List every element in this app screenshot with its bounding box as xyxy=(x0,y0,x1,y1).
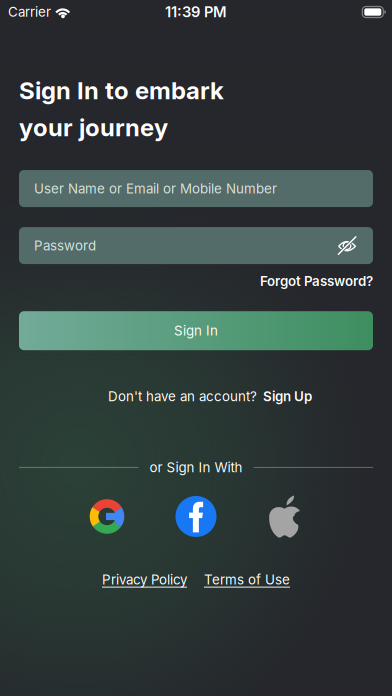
button[interactable]: Show password xyxy=(336,235,358,256)
button[interactable]: Sign in with Facebook xyxy=(175,496,216,537)
button[interactable]: Sign in with Google xyxy=(89,498,125,534)
staticText: User Name or Email or Mobile Number xyxy=(34,180,277,197)
staticText: Sign Up xyxy=(263,388,312,404)
staticText: Don't have an account? xyxy=(108,388,257,404)
staticText: Password xyxy=(34,237,96,254)
staticText: or Sign In With xyxy=(149,459,242,475)
staticText: Privacy Policy xyxy=(102,571,187,588)
staticText: 11:39 PM xyxy=(165,3,227,21)
staticText: your journey xyxy=(19,113,168,142)
button[interactable]: Privacy Policy xyxy=(102,571,187,588)
staticText: Sign In to embark xyxy=(19,76,224,105)
staticText: Forgot Password? xyxy=(260,273,373,289)
button[interactable]: Sign Up xyxy=(263,388,312,404)
staticText: Terms of Use xyxy=(204,571,290,588)
button[interactable]: Forgot Password? xyxy=(260,273,373,289)
staticText: Carrier xyxy=(8,4,51,20)
button[interactable]: Sign in with Apple xyxy=(267,494,303,538)
staticText: Sign In xyxy=(174,323,218,339)
button[interactable]: Terms of Use xyxy=(204,571,290,588)
button[interactable]: Sign In xyxy=(19,311,373,350)
